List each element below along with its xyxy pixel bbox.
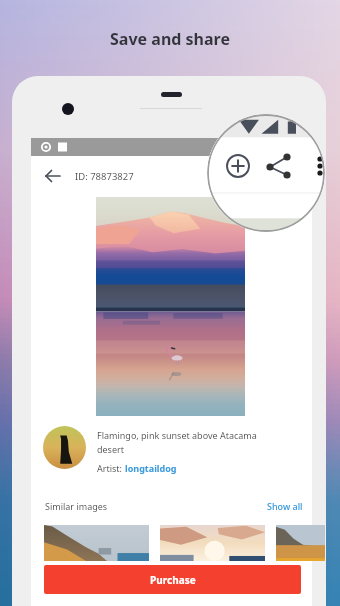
button[interactable]: Add to collection xyxy=(223,151,253,181)
button[interactable]: Purchase xyxy=(44,565,301,594)
staticText: Similar images xyxy=(45,500,108,512)
button[interactable]: Similar image 3 xyxy=(276,525,325,561)
button[interactable]: More options xyxy=(307,153,325,179)
button[interactable]: Show all xyxy=(267,500,303,512)
button[interactable]: Similar image 2 xyxy=(160,525,265,561)
staticText: Flamingo, pink sunset above Atacama dese… xyxy=(97,429,282,456)
staticText: Purchase xyxy=(150,573,196,587)
staticText: ID: 78873827 xyxy=(75,170,134,183)
button[interactable]: longtaildog xyxy=(125,462,177,474)
staticText: Save and share xyxy=(110,28,230,50)
staticText: Show all xyxy=(267,500,303,512)
button[interactable]: Similar image 1 xyxy=(44,525,149,561)
button[interactable]: Back xyxy=(31,156,75,196)
button[interactable]: Share xyxy=(264,151,294,181)
staticText: Artist: xyxy=(97,462,125,474)
